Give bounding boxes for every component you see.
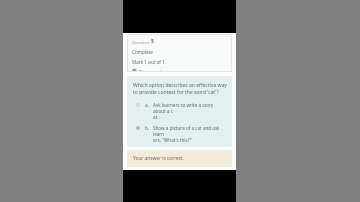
staticText: Complete xyxy=(132,49,153,55)
staticText: Show a picture of a cat and ask learn er… xyxy=(153,125,227,143)
staticText: b. xyxy=(145,125,150,131)
button[interactable]: a. xyxy=(133,102,227,120)
staticText: Question xyxy=(132,40,150,45)
staticText: Ask learners to write a story about a c … xyxy=(153,102,227,120)
other: Flag question xyxy=(132,69,137,72)
button[interactable]: Flag question xyxy=(132,69,172,72)
staticText: a. xyxy=(145,102,150,108)
staticText: 5 xyxy=(151,38,154,45)
staticText: Your answer is correct. xyxy=(133,155,185,162)
staticText: Flag question xyxy=(139,69,169,72)
staticText: Mark 1 out of 1 xyxy=(132,59,165,65)
button[interactable]: b. xyxy=(133,125,227,143)
button[interactable]: Your answer is correct. xyxy=(127,150,232,167)
staticText: Which option describes an effective way … xyxy=(133,82,227,95)
